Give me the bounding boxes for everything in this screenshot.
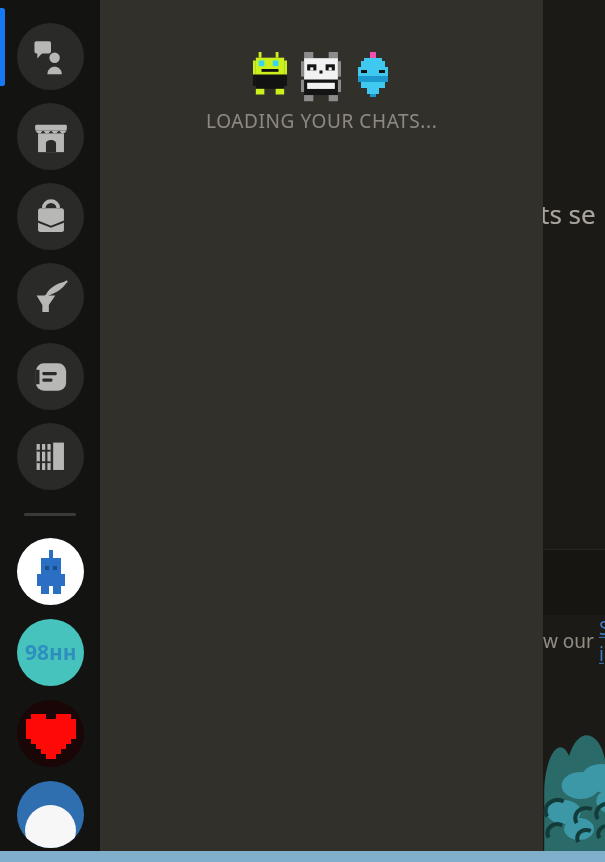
staticText: 98нн xyxy=(25,638,77,667)
staticText: LOADING YOUR CHATS... xyxy=(206,108,438,134)
staticText: w our xyxy=(543,628,599,654)
button[interactable]: Profile xyxy=(17,781,84,848)
button[interactable]: Profile 98хн xyxy=(17,619,84,686)
button[interactable]: Si xyxy=(599,615,605,667)
staticText: ts se xyxy=(540,196,596,231)
button[interactable]: Marketplace xyxy=(17,103,84,170)
button[interactable]: Bag xyxy=(17,183,84,250)
button[interactable]: Chats xyxy=(17,23,84,90)
button[interactable]: Create xyxy=(17,263,84,330)
button[interactable]: Profile robot xyxy=(17,538,84,605)
button[interactable]: Profile heart xyxy=(17,700,84,767)
button[interactable]: Feed xyxy=(17,343,84,410)
button[interactable]: Library xyxy=(17,423,84,490)
